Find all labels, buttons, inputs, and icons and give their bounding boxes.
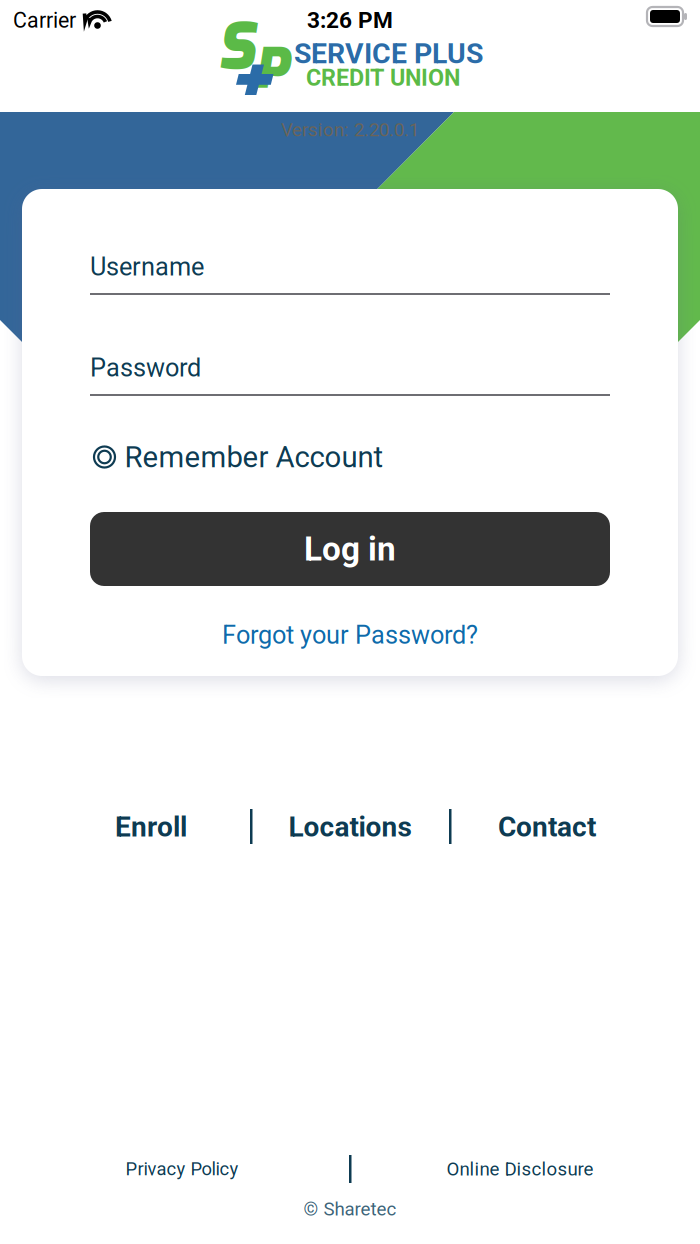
staticText: 3:26 PM: [307, 7, 393, 34]
staticText: Carrier: [13, 8, 76, 33]
button[interactable]: Locations: [270, 805, 430, 849]
button[interactable]: Contact: [477, 805, 617, 849]
staticText: © Sharetec: [303, 1198, 396, 1220]
button[interactable]: Privacy Policy: [92, 1153, 272, 1185]
staticText: Remember Account: [124, 440, 383, 474]
staticText: Version: 2.20.0.1: [281, 119, 419, 141]
staticText: SERVICE PLUS: [294, 37, 483, 70]
button[interactable]: Forgot your Password?: [90, 613, 610, 657]
staticText: P: [254, 33, 288, 106]
button[interactable]: Log in: [90, 512, 610, 586]
staticText: Password: [90, 353, 201, 383]
staticText: Contact: [498, 811, 596, 843]
staticText: S: [217, 5, 254, 90]
staticText: Locations: [288, 811, 411, 843]
staticText: CREDIT UNION: [306, 64, 460, 91]
button[interactable]: Online Disclosure: [430, 1153, 610, 1185]
staticText: Log in: [304, 529, 396, 569]
staticText: Enroll: [115, 811, 187, 843]
button[interactable]: Enroll: [81, 805, 221, 849]
staticText: Forgot your Password?: [222, 620, 478, 650]
button[interactable]: Remember Account: [92, 440, 392, 476]
staticText: Username: [90, 252, 204, 282]
staticText: Privacy Policy: [125, 1158, 238, 1180]
staticText: Online Disclosure: [446, 1158, 593, 1180]
